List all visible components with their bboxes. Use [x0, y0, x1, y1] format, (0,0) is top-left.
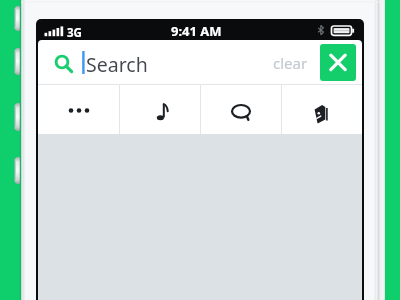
- button[interactable]: [38, 84, 119, 134]
- staticText: 3G: [67, 25, 82, 41]
- staticText: Search: [86, 51, 148, 78]
- button[interactable]: [320, 44, 356, 81]
- button[interactable]: clear: [266, 52, 314, 74]
- button[interactable]: [120, 84, 200, 134]
- button[interactable]: [201, 84, 281, 134]
- staticText: clear: [273, 53, 308, 73]
- button[interactable]: [38, 40, 362, 84]
- staticText: 9:41 AM: [171, 22, 222, 39]
- button[interactable]: [282, 84, 362, 134]
